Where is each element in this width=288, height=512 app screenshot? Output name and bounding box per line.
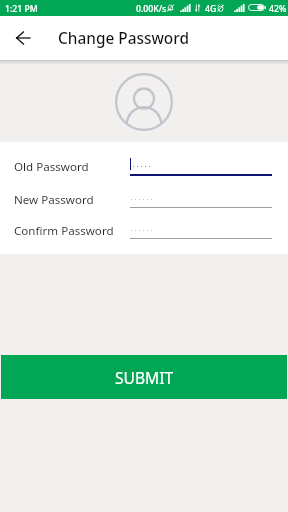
button[interactable]: New Password (0, 183, 288, 210)
staticText: SUBMIT (115, 367, 174, 388)
button[interactable]: Old Password (0, 150, 288, 177)
staticText: 4G (205, 3, 217, 15)
staticText: 0.00K/s (136, 3, 167, 15)
staticText: Change Password (58, 28, 189, 49)
staticText: New Password (14, 192, 94, 208)
button[interactable]: SUBMIT (1, 355, 287, 399)
button[interactable]: Back (6, 16, 40, 60)
staticText: Confirm Password (14, 223, 114, 239)
staticText: Old Password (14, 159, 89, 175)
staticText: 42% (269, 3, 287, 15)
button[interactable]: Confirm Password (0, 214, 288, 241)
staticText: 1:21 PM (5, 3, 38, 15)
